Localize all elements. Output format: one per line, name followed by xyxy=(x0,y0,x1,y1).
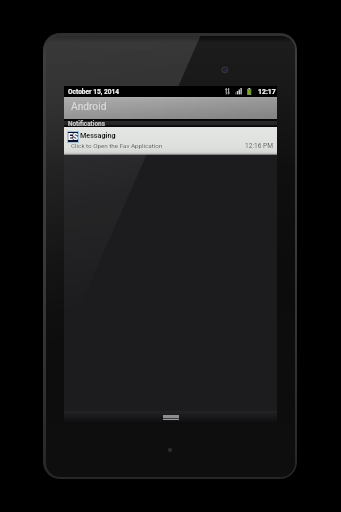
staticText: 12:17 xyxy=(258,88,276,96)
staticText: ES xyxy=(68,132,78,142)
button[interactable]: ES xyxy=(64,127,277,155)
staticText: Messaging xyxy=(80,131,116,139)
staticText: Notifications xyxy=(68,120,105,128)
staticText: Android xyxy=(71,101,107,113)
staticText: Click to Open the Fav Application xyxy=(71,142,163,149)
staticText: October 15, 2014 xyxy=(68,88,120,96)
button[interactable]: Home xyxy=(163,415,179,420)
staticText: 12:16 PM xyxy=(245,142,273,150)
